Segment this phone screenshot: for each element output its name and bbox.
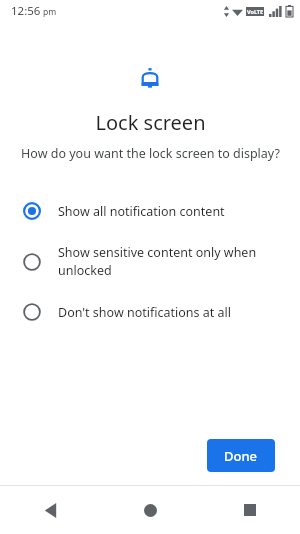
staticText: Show all notification content [58, 203, 225, 220]
button[interactable]: Don't show notifications at all [0, 291, 300, 333]
button[interactable]: Recent apps [200, 486, 300, 534]
button[interactable]: Home [100, 486, 200, 534]
staticText: Don't show notifications at all [58, 304, 232, 321]
staticText: Lock screen [95, 109, 206, 136]
button[interactable]: Show sensitive content only when unlocke… [0, 232, 300, 291]
button[interactable]: Done [207, 439, 275, 472]
staticText: VoLTE [247, 8, 264, 15]
button[interactable]: Show all notification content [0, 190, 300, 232]
button[interactable]: Back [0, 486, 100, 534]
staticText: pm [43, 6, 57, 18]
other: Notifications [137, 65, 163, 91]
staticText: Done [224, 447, 258, 465]
staticText: Show sensitive content only when unlocke… [58, 244, 280, 279]
staticText: How do you want the lock screen to displ… [21, 145, 280, 162]
staticText: 12:56 [11, 3, 41, 19]
